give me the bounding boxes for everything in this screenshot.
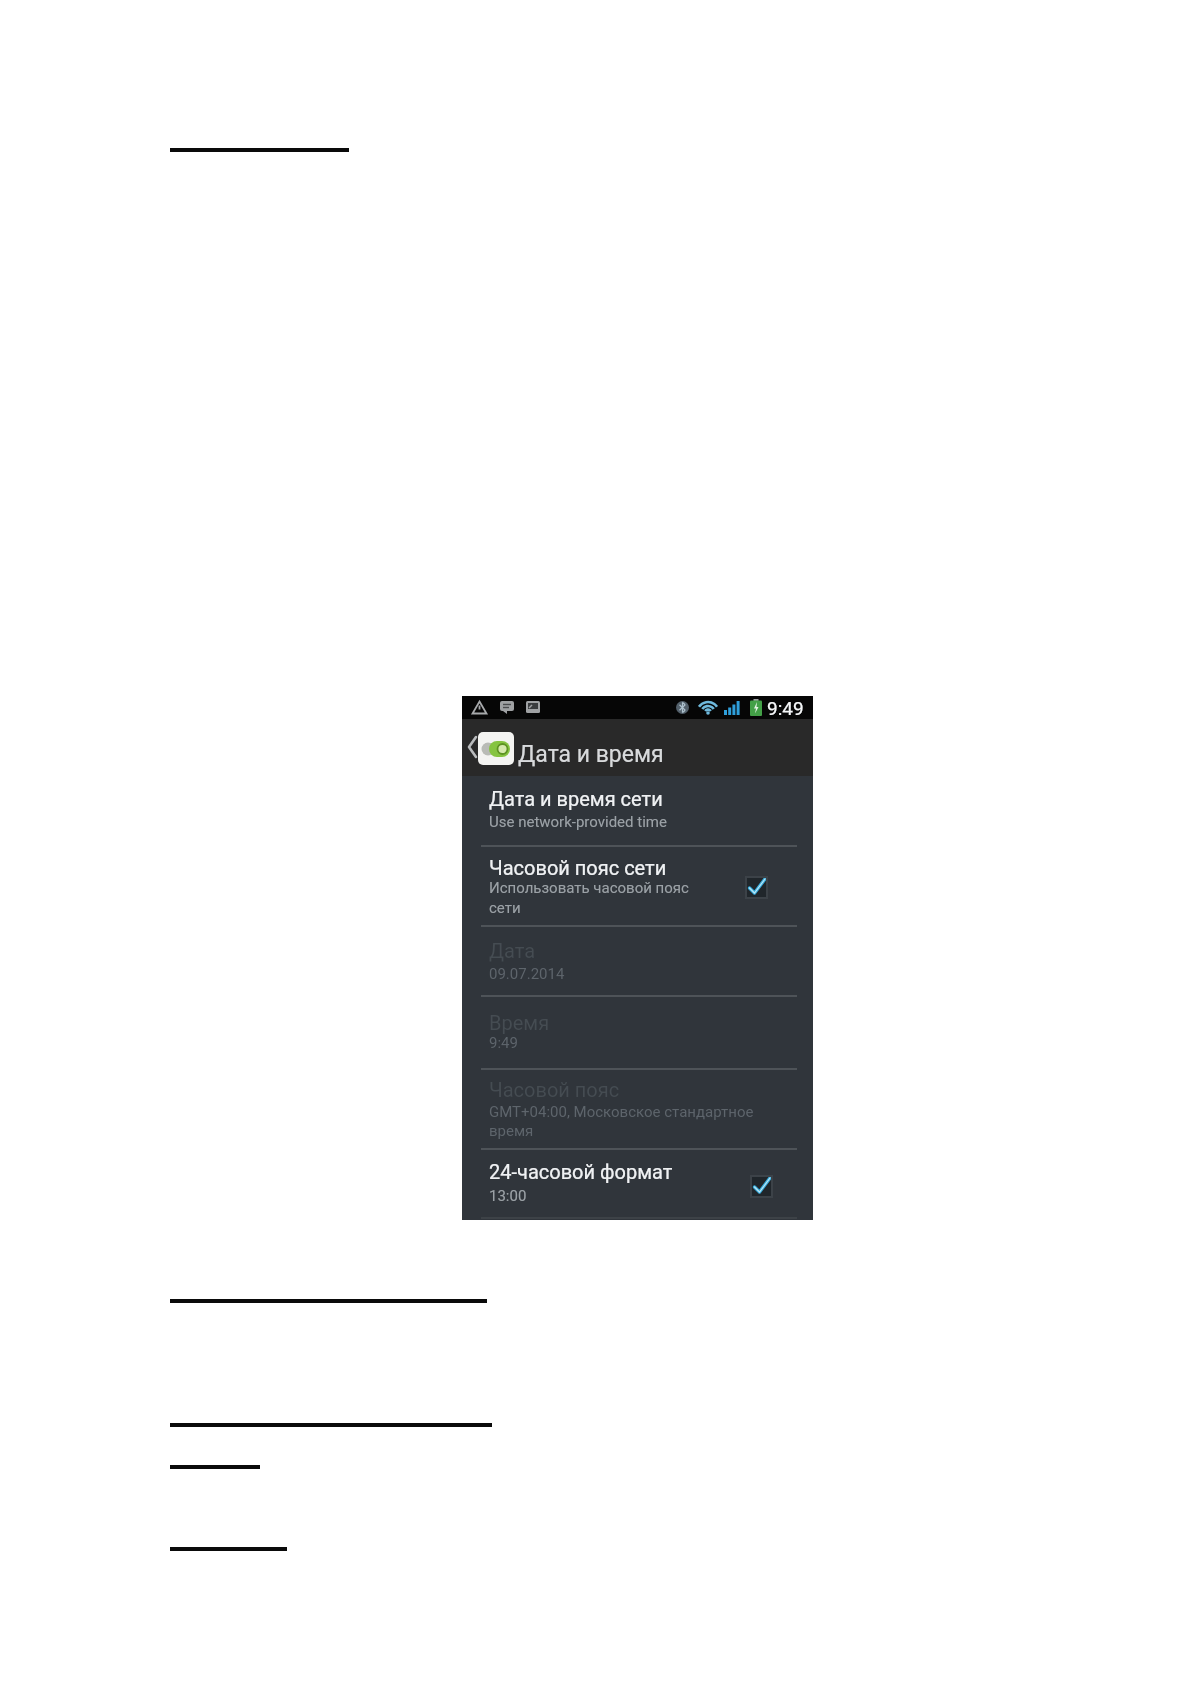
button[interactable]: [750, 1175, 773, 1198]
button[interactable]: [462, 995, 813, 1068]
staticText: 9:49: [767, 697, 804, 719]
staticText: 9:49: [489, 1034, 518, 1052]
staticText: Использовать часовой пояс: [489, 879, 689, 897]
staticText: Часовой пояс: [489, 1078, 620, 1101]
button[interactable]: [462, 1148, 813, 1220]
staticText: Дата и время сети: [489, 787, 663, 810]
staticText: Время: [489, 1011, 550, 1034]
staticText: сети: [489, 899, 521, 917]
staticText: GMT+04:00, Московское стандартное: [489, 1103, 754, 1121]
button[interactable]: [462, 845, 813, 925]
staticText: Use network-provided time: [489, 813, 667, 831]
staticText: 24-часовой формат: [489, 1160, 673, 1183]
staticText: время: [489, 1122, 534, 1140]
button[interactable]: [462, 719, 518, 776]
button[interactable]: [462, 1068, 813, 1148]
staticText: Дата: [489, 939, 536, 962]
staticText: Часовой пояс сети: [489, 856, 667, 879]
button[interactable]: [462, 776, 813, 845]
button[interactable]: [462, 925, 813, 995]
staticText: 13:00: [489, 1187, 527, 1205]
staticText: 09.07.2014: [489, 965, 565, 983]
button[interactable]: [745, 876, 768, 899]
staticText: Дата и время: [518, 741, 664, 768]
